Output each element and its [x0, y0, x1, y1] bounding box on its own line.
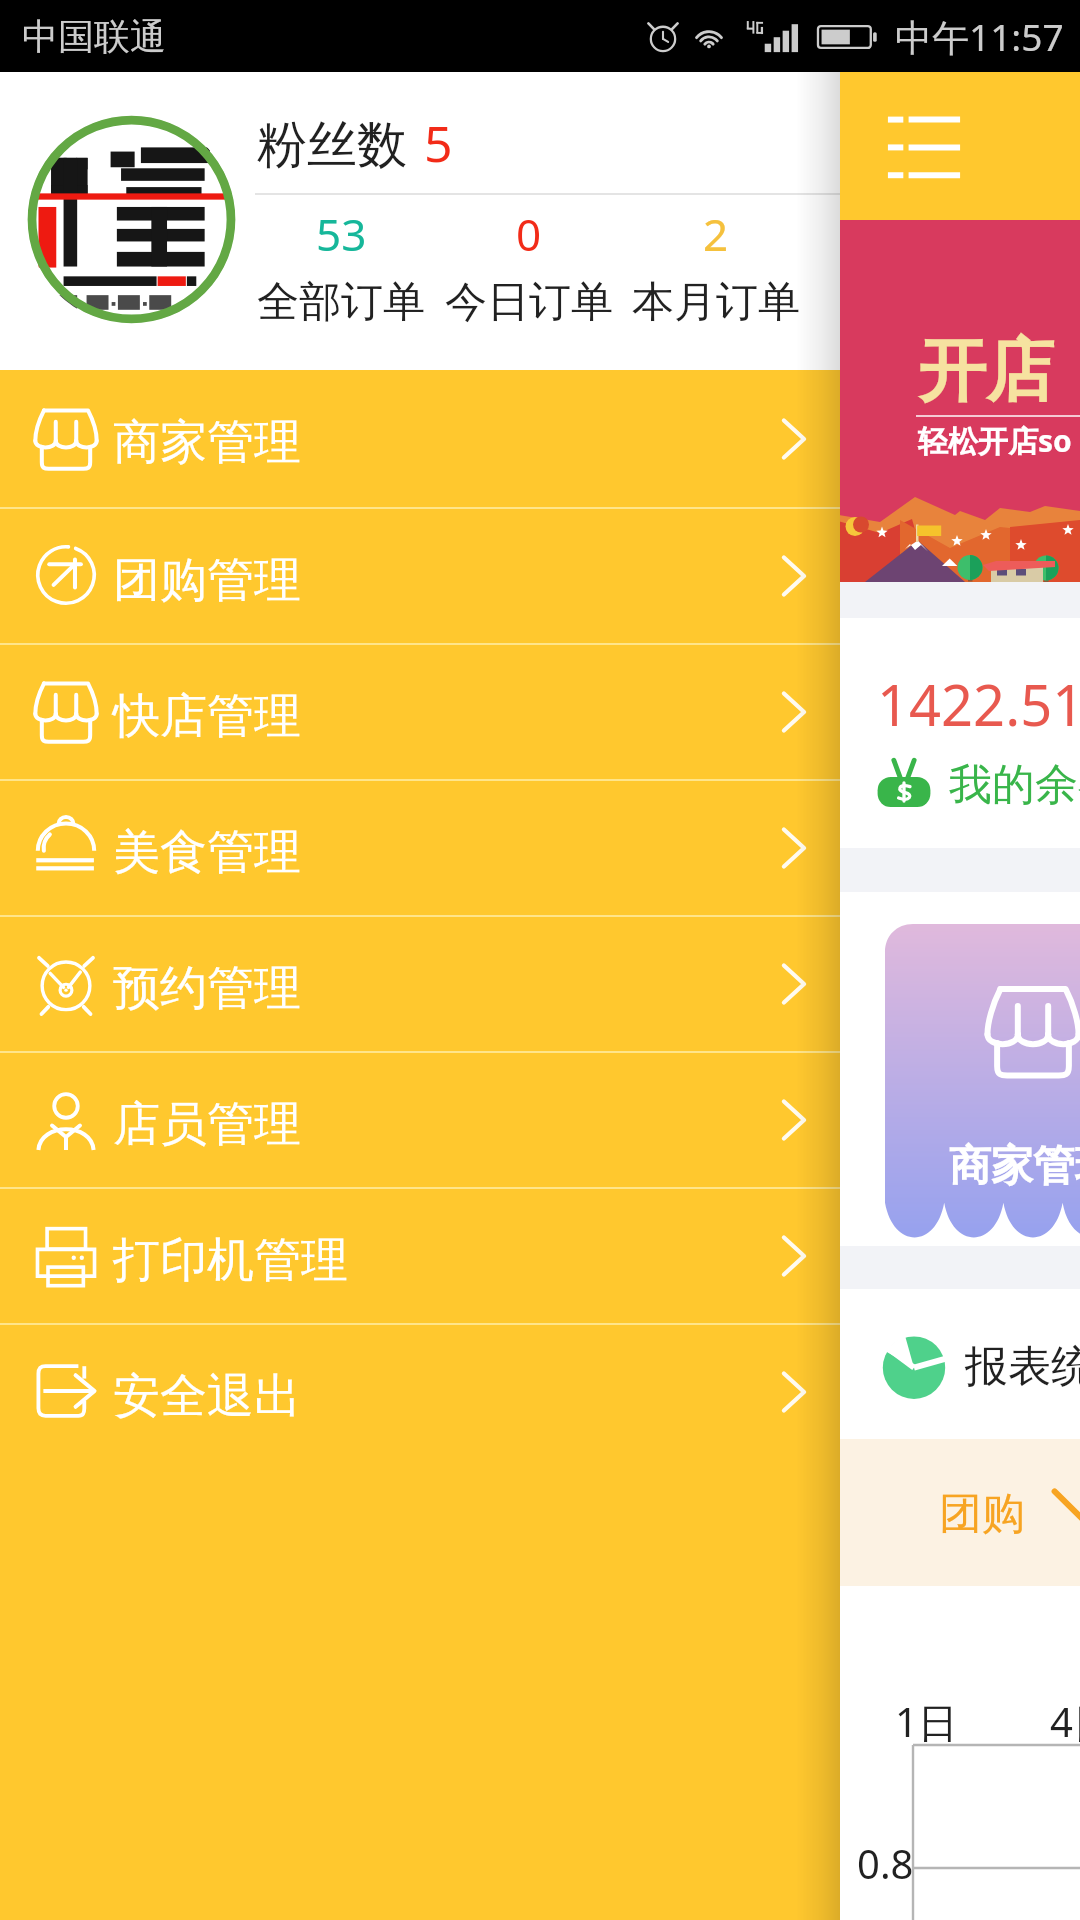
button[interactable]: 美食管理: [0, 781, 840, 915]
staticText: 安全退出: [113, 1367, 301, 1426]
button[interactable]: 店员管理: [0, 1053, 840, 1187]
staticText: 中午11:57: [895, 11, 1064, 62]
button[interactable]: 报表统计: [0, 1289, 1080, 1439]
button[interactable]: 安全退出: [0, 1325, 840, 1459]
staticText: 商家管理: [113, 413, 301, 472]
button[interactable]: 团购: [0, 1439, 1080, 1586]
staticText: 粉丝数: [257, 114, 407, 177]
button[interactable]: 开店: [0, 220, 1080, 582]
staticText: 5: [424, 109, 453, 177]
staticText: 我的余额: [949, 758, 1080, 812]
staticText: 53: [316, 204, 367, 264]
staticText: 本月订单: [632, 276, 800, 329]
staticText: 1422.51: [877, 666, 1080, 742]
staticText: 今日订单: [445, 276, 613, 329]
staticText: 店员管理: [113, 1095, 301, 1154]
staticText: 全部订单: [257, 276, 425, 329]
button[interactable]: 团购管理: [0, 509, 840, 643]
staticText: 1日: [895, 1694, 958, 1749]
staticText: 预约管理: [113, 959, 301, 1018]
button[interactable]: 0: [435, 204, 622, 329]
staticText: 轻松开店so: [918, 420, 1072, 461]
staticText: 0: [516, 204, 542, 264]
staticText: 团购: [939, 1487, 1025, 1541]
staticText: 2: [703, 204, 729, 264]
staticText: 快店管理: [113, 687, 301, 746]
staticText: 打印机管理: [113, 1231, 348, 1290]
button[interactable]: Shop avatar: [27, 115, 236, 324]
button[interactable]: 打印机管理: [0, 1189, 840, 1323]
button[interactable]: 53: [247, 204, 435, 329]
staticText: 开店: [918, 329, 1054, 415]
button[interactable]: 快店管理: [0, 645, 840, 779]
staticText: 中国联通: [22, 14, 166, 59]
button[interactable]: 2: [622, 204, 809, 329]
staticText: 商家管理: [949, 1140, 1080, 1193]
staticText: 美食管理: [113, 823, 301, 882]
staticText: 团购管理: [113, 551, 301, 610]
staticText: 4日: [1050, 1694, 1080, 1749]
button[interactable]: 商家管理: [0, 370, 840, 507]
button[interactable]: 商家管理: [885, 924, 1080, 1230]
staticText: 0.8: [857, 1836, 914, 1890]
button[interactable]: Menu: [880, 102, 968, 190]
staticText: 报表统计: [965, 1340, 1080, 1394]
button[interactable]: 预约管理: [0, 917, 840, 1051]
